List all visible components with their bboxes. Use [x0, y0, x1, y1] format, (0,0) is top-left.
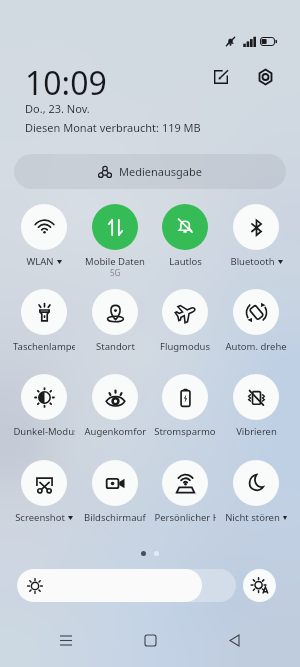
staticText: Bildschirmaufnahme [84, 511, 146, 524]
button[interactable]: Dunkel-Modus [21, 374, 67, 420]
staticText: Autom. drehen [225, 340, 287, 353]
button[interactable]: Lautlos [162, 204, 208, 250]
staticText: Flugmodus [160, 340, 210, 353]
button[interactable]: Autom. drehen [233, 289, 279, 335]
staticText: Taschenlampe [13, 340, 75, 353]
button[interactable]: WLAN [21, 204, 67, 250]
button[interactable]: Taschenlampe [21, 289, 67, 335]
staticText: Bluetooth [230, 255, 275, 268]
staticText: Nicht stören [225, 511, 280, 524]
staticText: Do., 23. Nov. [25, 101, 90, 116]
staticText: Screenshot [15, 511, 65, 524]
staticText: Standort [96, 340, 135, 353]
staticText: Stromsparmodus [154, 425, 216, 438]
button[interactable]: Startbildschirm [132, 623, 168, 657]
staticText: 10:09 [25, 61, 107, 105]
button[interactable]: Bluetooth [233, 204, 279, 250]
staticText: Augenkomfort [84, 425, 146, 438]
button[interactable]: Vibrieren [233, 374, 279, 420]
staticText: Vibrieren [236, 425, 277, 438]
button[interactable]: Helligkeit [17, 569, 236, 602]
staticText: Diesen Monat verbraucht: 119 MB [25, 120, 201, 135]
button[interactable]: Standort [92, 289, 138, 335]
staticText: 5G [110, 267, 121, 278]
button[interactable]: Stromsparmodus [162, 374, 208, 420]
button[interactable]: Automatische Helligkeit [243, 569, 276, 602]
button[interactable]: Screenshot [21, 460, 67, 506]
button[interactable]: Medienausgabe [14, 154, 286, 189]
staticText: Medienausgabe [119, 164, 202, 179]
staticText: Dunkel-Modus [13, 425, 75, 438]
button[interactable]: Flugmodus [162, 289, 208, 335]
staticText: Lautlos [169, 255, 202, 268]
button[interactable]: Persönlicher Hotspot [162, 460, 208, 506]
button[interactable]: Nicht stören [233, 460, 279, 506]
staticText: Persönlicher Hotspot [154, 511, 216, 524]
button[interactable]: Einstellungen [252, 63, 279, 90]
button[interactable]: Mobile Daten [92, 204, 138, 250]
button[interactable]: Menü [48, 623, 84, 657]
staticText: Mobile Daten [85, 255, 145, 268]
button[interactable]: Bildschirmaufnahme [92, 460, 138, 506]
button[interactable]: Augenkomfort [92, 374, 138, 420]
staticText: WLAN [26, 255, 54, 268]
button[interactable]: Zurück [216, 623, 252, 657]
button[interactable]: Bearbeiten [207, 63, 234, 90]
